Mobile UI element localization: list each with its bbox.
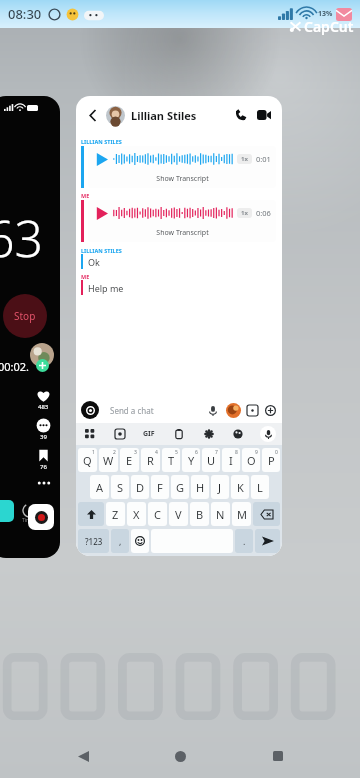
staticText: N: [216, 507, 225, 522]
button[interactable]: Z: [106, 502, 125, 526]
button[interactable]: Home: [165, 741, 195, 771]
button[interactable]: X: [127, 502, 146, 526]
button[interactable]: H: [191, 475, 209, 499]
button[interactable]: Stickers: [245, 403, 259, 417]
staticText: V: [175, 507, 182, 522]
button[interactable]: 483: [36, 388, 51, 403]
button[interactable]: Shift: [78, 502, 104, 526]
button[interactable]: Record: [28, 504, 54, 530]
button[interactable]: E: [120, 448, 139, 472]
button[interactable]: Show Transcript: [156, 228, 209, 238]
button[interactable]: U: [202, 448, 220, 472]
staticText: B: [196, 507, 204, 522]
staticText: LILLIAN STILES: [81, 247, 122, 254]
staticText: 0:01: [256, 154, 271, 164]
button[interactable]: Stop: [3, 294, 47, 338]
staticText: J: [218, 480, 222, 495]
staticText: 76: [40, 463, 47, 471]
button[interactable]: G: [171, 475, 189, 499]
button[interactable]: Play: [93, 205, 110, 222]
button[interactable]: More: [263, 403, 277, 417]
button[interactable]: R: [141, 448, 160, 472]
button[interactable]: Bitmoji: [226, 403, 241, 418]
button[interactable]: Video call: [254, 105, 274, 125]
button[interactable]: GIF: [141, 426, 157, 442]
staticText: 1: [92, 449, 95, 456]
staticText: U: [207, 453, 216, 468]
button[interactable]: Settings: [201, 426, 217, 442]
button[interactable]: 39: [36, 418, 51, 433]
button[interactable]: Period: [235, 529, 253, 553]
button[interactable]: C: [148, 502, 167, 526]
button[interactable]: Play: [88, 146, 276, 188]
button[interactable]: 76: [36, 448, 51, 463]
button[interactable]: Ok: [76, 254, 282, 269]
staticText: A: [96, 480, 104, 495]
button[interactable]: Voice: [260, 426, 276, 442]
button[interactable]: D: [131, 475, 149, 499]
staticText: 39: [40, 433, 47, 441]
button[interactable]: A: [90, 475, 109, 499]
button[interactable]: 1x: [241, 155, 248, 163]
button[interactable]: Palette: [230, 426, 246, 442]
button[interactable]: P: [262, 448, 280, 472]
staticText: CapCut: [304, 17, 354, 36]
staticText: ?123: [85, 536, 103, 547]
staticText: X: [133, 507, 140, 522]
button[interactable]: Play: [93, 151, 110, 168]
button[interactable]: Backspace: [253, 502, 280, 526]
button[interactable]: Call: [231, 105, 251, 125]
button[interactable]: W: [99, 448, 118, 472]
staticText: W: [103, 453, 114, 468]
staticText: 483: [38, 403, 49, 411]
staticText: Z: [112, 507, 119, 522]
button[interactable]: Play: [88, 200, 276, 242]
staticText: LILLIAN STILES: [81, 138, 122, 145]
button[interactable]: Clipboard: [171, 426, 187, 442]
staticText: Timer: [22, 517, 36, 524]
button[interactable]: M: [232, 502, 251, 526]
button[interactable]: V: [169, 502, 188, 526]
staticText: 4: [155, 449, 158, 456]
staticText: Ok: [88, 256, 100, 268]
button[interactable]: Comma: [111, 529, 129, 553]
staticText: R: [147, 453, 154, 468]
button[interactable]: I: [222, 448, 240, 472]
button[interactable]: [131, 529, 149, 553]
button[interactable]: Show Transcript: [156, 174, 209, 184]
button[interactable]: T: [162, 448, 180, 472]
button[interactable]: S: [111, 475, 129, 499]
staticText: P: [268, 453, 275, 468]
staticText: ME: [81, 192, 90, 199]
button[interactable]: 1x: [241, 209, 248, 217]
button[interactable]: K: [231, 475, 249, 499]
button[interactable]: Sticker: [112, 426, 128, 442]
staticText: 7: [215, 449, 218, 456]
staticText: 08:30: [8, 5, 42, 23]
button[interactable]: B: [190, 502, 209, 526]
button[interactable]: Back: [84, 106, 102, 124]
button[interactable]: Send: [255, 529, 280, 553]
button[interactable]: Q: [78, 448, 97, 472]
button[interactable]: Camera: [81, 401, 99, 419]
staticText: 9: [255, 449, 258, 456]
button[interactable]: Help me: [76, 280, 282, 295]
staticText: I: [229, 453, 233, 468]
button[interactable]: O: [242, 448, 260, 472]
button[interactable]: Symbols: [78, 529, 109, 553]
button[interactable]: Lillian Stiles: [131, 108, 231, 123]
button[interactable]: Recents: [263, 741, 293, 771]
staticText: Q: [83, 453, 92, 468]
staticText: 00:02.: [0, 359, 30, 374]
button[interactable]: N: [211, 502, 230, 526]
button[interactable]: Send a chat: [103, 402, 222, 419]
button[interactable]: F: [151, 475, 169, 499]
staticText: 1x: [241, 209, 248, 217]
button[interactable]: Apps: [82, 426, 98, 442]
button[interactable]: L: [251, 475, 269, 499]
button[interactable]: Recording preview: [0, 96, 60, 558]
button[interactable]: Y: [182, 448, 200, 472]
button[interactable]: J: [211, 475, 229, 499]
button[interactable]: Back: [68, 741, 98, 771]
